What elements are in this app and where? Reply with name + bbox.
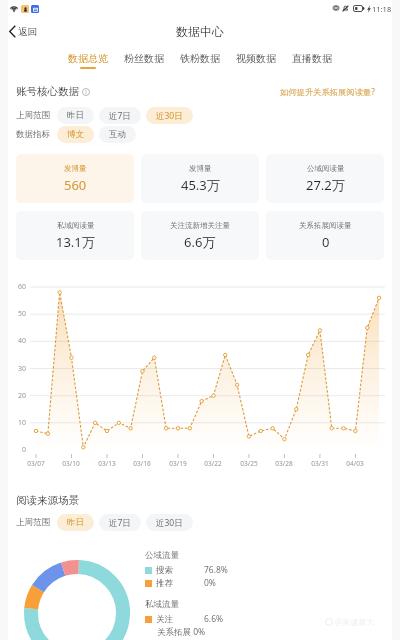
staticText: 直播数据: [292, 52, 332, 65]
staticText: 03/28: [270, 459, 298, 468]
staticText: 03/31: [306, 459, 334, 468]
button[interactable]: 视频数据: [228, 50, 284, 69]
staticText: 0%: [204, 577, 216, 589]
staticText: 上周范围: [16, 110, 50, 121]
staticText: 如何提升关系拓展阅读量?: [280, 86, 375, 97]
staticText: 数据指标: [16, 129, 50, 140]
staticText: 公域阅读量: [307, 164, 345, 173]
staticText: 公域流量: [145, 550, 179, 561]
staticText: 近7日: [109, 517, 131, 529]
button[interactable]: 粉丝数据: [116, 50, 172, 69]
staticText: 03/25: [235, 459, 263, 468]
button[interactable]: 铁粉数据: [172, 50, 228, 69]
staticText: 数据中心: [176, 24, 224, 39]
button[interactable]: 发博量: [141, 154, 259, 203]
staticText: 13.1万: [56, 233, 95, 251]
button[interactable]: 昨日: [57, 514, 94, 531]
staticText: 搜索: [156, 565, 204, 576]
staticText: 10: [8, 418, 26, 428]
button[interactable]: 返回: [0, 23, 45, 40]
button[interactable]: 直播数据: [284, 50, 340, 69]
staticText: 6.6万: [184, 233, 216, 251]
button[interactable]: 昨日: [57, 107, 94, 124]
staticText: 粉丝数据: [124, 52, 164, 65]
staticText: 03/07: [22, 459, 50, 468]
button[interactable]: 私域阅读量: [16, 211, 134, 260]
staticText: 6.6%: [204, 613, 224, 625]
button[interactable]: 互动: [99, 126, 136, 143]
staticText: 近30日: [156, 517, 183, 529]
staticText: 0: [8, 445, 26, 455]
staticText: 关注: [156, 614, 204, 625]
staticText: 发博量: [64, 164, 87, 173]
staticText: 账号核心数据: [16, 85, 79, 98]
button[interactable]: 近30日: [146, 514, 193, 531]
staticText: 数据总览: [68, 52, 108, 65]
staticText: 04/03: [341, 459, 369, 468]
staticText: 30: [8, 364, 26, 374]
staticText: 视频数据: [236, 52, 276, 65]
staticText: 76.8%: [204, 564, 228, 576]
staticText: 03/13: [93, 459, 121, 468]
staticText: 03/16: [128, 459, 156, 468]
staticText: 关系拓展阅读量: [299, 221, 352, 230]
staticText: 上周范围: [16, 517, 50, 528]
button[interactable]: 近7日: [99, 514, 141, 531]
staticText: 私域阅读量: [57, 221, 95, 230]
button[interactable]: 如何提升关系拓展阅读量?: [280, 86, 375, 97]
button[interactable]: 近30日: [146, 107, 193, 124]
staticText: @家健最大: [335, 616, 375, 627]
staticText: 27.2万: [306, 176, 345, 194]
staticText: 推荐: [156, 578, 204, 589]
button[interactable]: 数据总览: [60, 50, 116, 69]
staticText: 博文: [67, 129, 84, 140]
staticText: 03/10: [57, 459, 85, 468]
staticText: 阅读来源场景: [16, 494, 79, 507]
button[interactable]: 近7日: [99, 107, 141, 124]
staticText: 03/22: [199, 459, 227, 468]
button[interactable]: 关注流新增关注量: [141, 211, 259, 260]
staticText: 互动: [109, 129, 126, 140]
staticText: 关注流新增关注量: [170, 221, 230, 230]
staticText: 45.3万: [181, 176, 220, 194]
staticText: 11:18: [372, 4, 392, 14]
staticText: 20: [8, 391, 26, 401]
staticText: 返回: [18, 26, 37, 38]
staticText: 近7日: [109, 110, 131, 122]
staticText: 铁粉数据: [180, 52, 220, 65]
button[interactable]: 博文: [57, 126, 94, 143]
staticText: 发博量: [189, 164, 212, 173]
staticText: 40: [8, 336, 26, 346]
staticText: 关系拓展 0%: [157, 626, 206, 638]
staticText: 03/19: [164, 459, 192, 468]
button[interactable]: 发博量: [16, 154, 134, 203]
staticText: 0: [322, 233, 330, 251]
staticText: 560: [64, 176, 87, 194]
button[interactable]: 关系拓展阅读量: [266, 211, 384, 260]
staticText: 私域流量: [145, 599, 179, 610]
staticText: 昨日: [67, 517, 84, 528]
staticText: 昨日: [67, 110, 84, 121]
staticText: 近30日: [156, 110, 183, 122]
staticText: 50: [8, 309, 26, 319]
button[interactable]: 公域阅读量: [266, 154, 384, 203]
staticText: 60: [8, 282, 26, 292]
